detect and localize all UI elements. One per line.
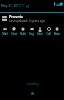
button[interactable]: User (37, 27, 43, 36)
staticText: Note (54, 32, 60, 36)
button[interactable]: Presets (2, 14, 64, 23)
button[interactable]: Share (25, 4, 29, 8)
staticText: Last updated: 4 years ago (9, 19, 46, 23)
button[interactable]: Bulb (20, 27, 26, 36)
staticText: 1 (22, 4, 24, 8)
button[interactable]: Chat (11, 27, 17, 36)
staticText: Chat (11, 32, 17, 36)
staticText: Presets (9, 14, 23, 19)
button[interactable]: Fog (29, 27, 34, 36)
button[interactable]: Mail (2, 27, 8, 36)
staticText: Fog (29, 32, 34, 36)
button[interactable]: Call (46, 27, 51, 36)
staticText: User (37, 32, 43, 36)
staticText: May 31, 2017 (1, 4, 21, 8)
staticText: Bulb (20, 32, 26, 36)
staticText: Mail (2, 32, 8, 36)
button[interactable]: Note (54, 27, 60, 36)
staticText: Loading (26, 82, 39, 86)
staticText: Call (46, 32, 51, 36)
